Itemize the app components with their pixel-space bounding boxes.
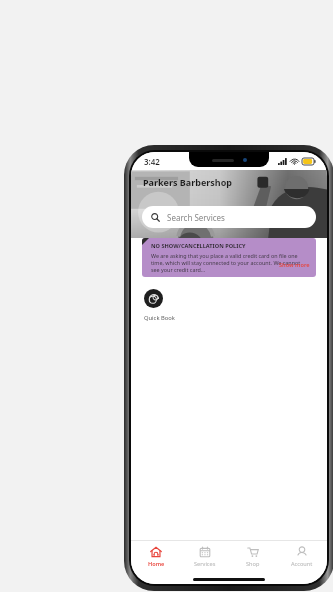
- staticText: 3:42: [144, 156, 160, 167]
- staticText: NO SHOW/CANCELLATION POLICY: [151, 242, 246, 250]
- staticText: Search Services: [167, 212, 225, 223]
- staticText: Shop: [246, 560, 260, 568]
- button[interactable]: Services: [182, 544, 228, 570]
- staticText: We are asking that you place a valid cre…: [151, 252, 310, 273]
- button[interactable]: Shop: [230, 544, 276, 570]
- other: Quick Book: [144, 289, 163, 308]
- button[interactable]: Search Services: [142, 206, 316, 228]
- button[interactable]: Home: [133, 544, 179, 570]
- staticText: Home: [148, 560, 165, 568]
- button[interactable]: Quick Book: [144, 289, 175, 322]
- staticText: Parkers Barbershop: [143, 176, 233, 188]
- button[interactable]: Account: [279, 544, 325, 570]
- staticText: Quick Book: [144, 314, 175, 322]
- staticText: Account: [291, 560, 313, 568]
- button[interactable]: Show more: [279, 261, 310, 269]
- button[interactable]: NO SHOW/CANCELLATION POLICY: [142, 238, 316, 277]
- staticText: Services: [194, 560, 216, 568]
